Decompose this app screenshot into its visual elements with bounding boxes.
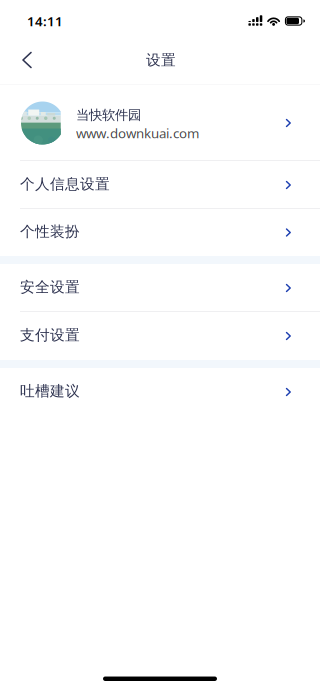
staticText: www.downkuai.com	[76, 124, 199, 142]
button[interactable]: 安全设置	[0, 264, 320, 312]
button[interactable]: 个性装扮	[0, 209, 320, 256]
button[interactable]: Back	[0, 42, 49, 84]
button[interactable]: 个人信息设置	[0, 161, 320, 209]
staticText: 当快软件园	[76, 107, 141, 123]
staticText: 个性装扮	[20, 222, 80, 240]
button[interactable]: 当快软件园	[0, 85, 320, 161]
staticText: 支付设置	[20, 326, 80, 344]
button[interactable]: 吐槽建议	[0, 368, 320, 416]
staticText: 设置	[146, 51, 176, 69]
staticText: 14:11	[27, 12, 63, 30]
staticText: 安全设置	[20, 278, 80, 296]
staticText: 吐槽建议	[20, 382, 80, 400]
button[interactable]: 支付设置	[0, 312, 320, 360]
staticText: 个人信息设置	[20, 175, 110, 193]
